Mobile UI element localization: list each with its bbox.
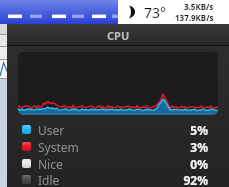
staticText: 3%	[190, 139, 208, 155]
button[interactable]: Weather	[120, 2, 140, 22]
staticText: Nice	[38, 156, 63, 172]
staticText: 137.9KB/s	[175, 12, 214, 23]
button[interactable]: CPU	[7, 24, 229, 46]
staticText: Idle	[38, 172, 60, 187]
staticText: System	[38, 139, 79, 155]
button[interactable]: Network activity graph	[0, 0, 118, 24]
staticText: 92%	[183, 172, 208, 187]
button[interactable]: Idle	[17, 172, 219, 187]
staticText: 3.5KB/s	[184, 1, 214, 12]
staticText: User	[38, 122, 65, 138]
button[interactable]: Network throughput	[175, 1, 214, 23]
button[interactable]: Nice	[17, 155, 219, 172]
staticText: 73°	[144, 3, 167, 22]
staticText: CPU	[107, 28, 130, 43]
button[interactable]: CPU history graph	[18, 52, 218, 115]
button[interactable]: User	[17, 121, 219, 138]
button[interactable]: System	[17, 138, 219, 155]
staticText: 0%	[190, 156, 208, 172]
staticText: 5%	[190, 122, 208, 138]
